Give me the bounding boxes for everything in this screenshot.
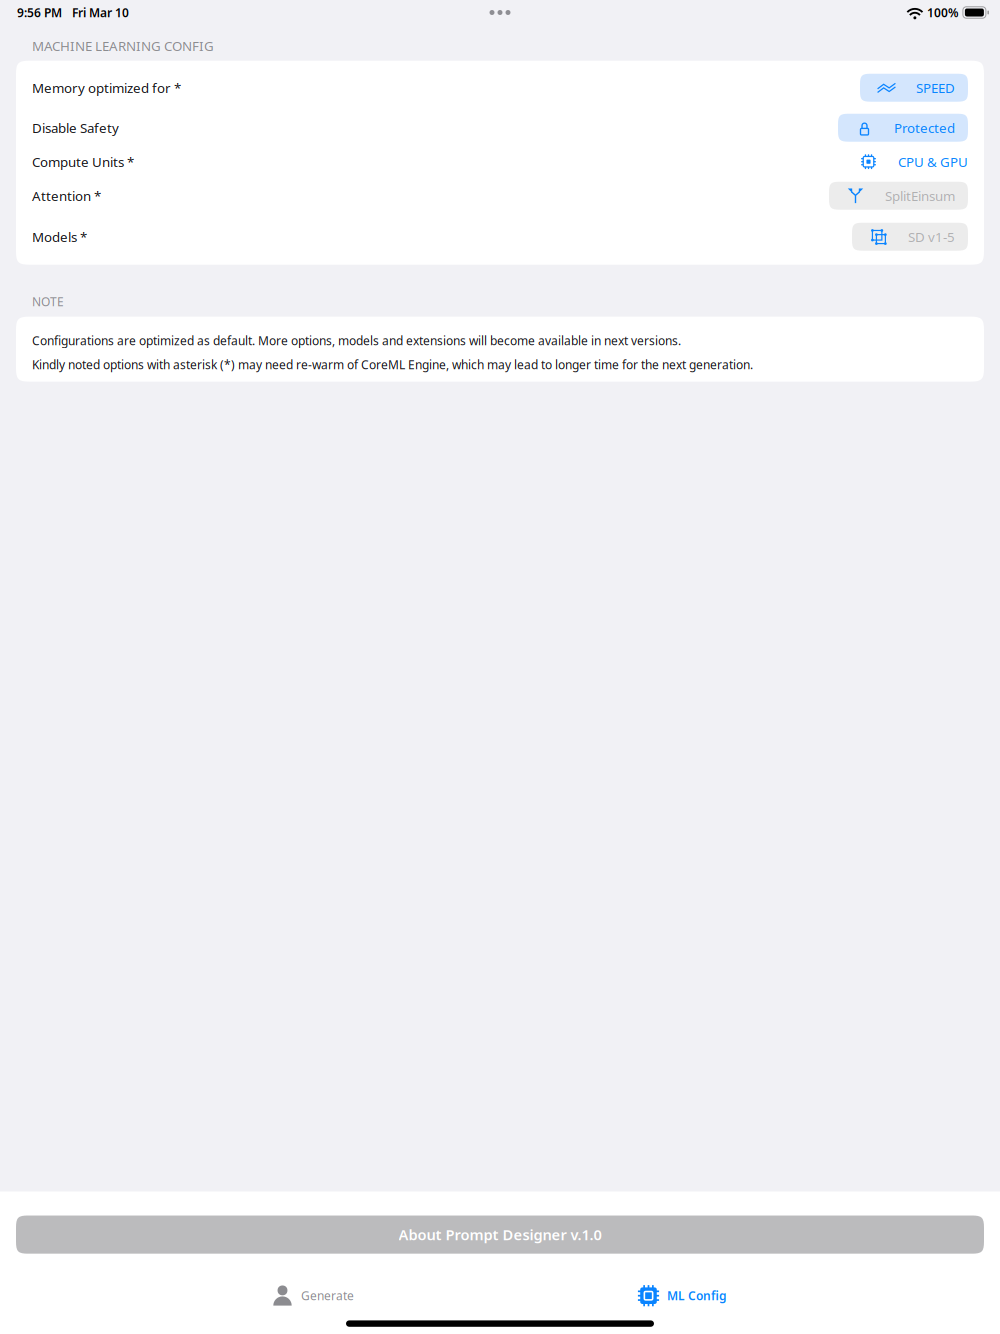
staticText: Kindly noted options with asterisk (*) m… — [32, 357, 753, 373]
staticText: 100% — [927, 4, 959, 20]
staticText: NOTE — [32, 294, 64, 310]
staticText: Disable Safety — [32, 119, 119, 137]
staticText: Fri Mar 10 — [72, 4, 129, 20]
staticText: ML Config — [667, 1288, 727, 1304]
staticText: Memory optimized for * — [32, 79, 181, 97]
staticText: CPU & GPU — [898, 153, 968, 171]
staticText: Compute Units * — [32, 153, 134, 171]
staticText: Attention * — [32, 187, 101, 205]
staticText: About Prompt Designer v.1.0 — [398, 1225, 601, 1244]
staticText: Models * — [32, 228, 87, 246]
staticText: Configurations are optimized as default.… — [32, 333, 681, 349]
button[interactable]: About Prompt Designer v.1.0 — [16, 1215, 984, 1254]
button[interactable]: SPEED — [860, 74, 968, 102]
staticText: SD v1-5 — [908, 228, 955, 246]
button[interactable]: Generate — [259, 1276, 366, 1316]
button[interactable]: SD v1-5 — [852, 223, 968, 251]
staticText: Generate — [301, 1288, 354, 1304]
staticText: SplitEinsum — [885, 187, 955, 205]
button[interactable]: ML Config — [625, 1276, 739, 1316]
button[interactable]: SplitEinsum — [829, 182, 968, 210]
staticText: 9:56 PM — [17, 4, 62, 20]
button[interactable]: CPU & GPU — [859, 148, 968, 176]
staticText: SPEED — [916, 79, 955, 97]
staticText: MACHINE LEARNING CONFIG — [32, 37, 214, 55]
button[interactable]: Protected — [838, 114, 968, 142]
staticText: Protected — [894, 119, 955, 137]
